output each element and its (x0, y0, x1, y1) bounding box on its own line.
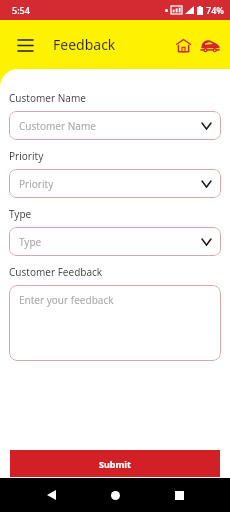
button[interactable]: Customer Name (9, 111, 221, 140)
staticText: Customer Feedback (9, 265, 103, 279)
staticText: Submit (99, 458, 131, 470)
button[interactable]: Enter your feedback (9, 285, 221, 361)
button[interactable]: Home (102, 482, 128, 508)
staticText: Priority (19, 177, 202, 191)
button[interactable]: Home (172, 34, 194, 56)
staticText: Customer Name (9, 91, 86, 105)
staticText: 74% (206, 4, 224, 16)
staticText: 5:54 (12, 4, 30, 16)
button[interactable]: Submit (10, 450, 220, 477)
button[interactable]: Back (38, 482, 64, 508)
button[interactable]: Type (9, 227, 221, 256)
staticText: Priority (9, 149, 44, 163)
button[interactable]: Vehicles (198, 33, 222, 57)
staticText: Feedback (53, 35, 116, 54)
staticText: Customer Name (19, 119, 202, 133)
staticText: Type (19, 235, 202, 249)
staticText: Type (9, 207, 32, 221)
button[interactable]: Priority (9, 169, 221, 198)
button[interactable]: Open navigation menu (9, 29, 41, 61)
button[interactable]: Recent apps (166, 482, 192, 508)
staticText: Enter your feedback (19, 293, 114, 307)
